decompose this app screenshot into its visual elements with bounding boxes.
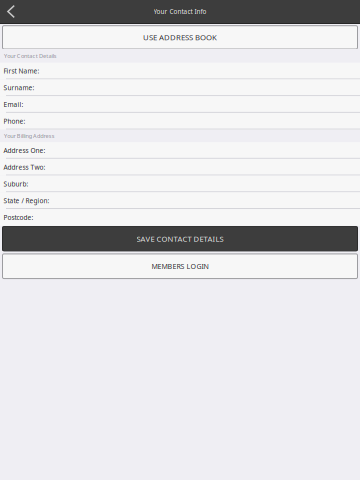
button[interactable]: State / Region: xyxy=(0,192,360,209)
staticText: SAVE CONTACT DETAILS xyxy=(136,233,223,244)
button[interactable]: Surname: xyxy=(0,79,360,96)
staticText: Postcode: xyxy=(3,213,33,222)
button[interactable]: Phone: xyxy=(0,113,360,130)
staticText: MEMBERS LOGIN xyxy=(151,261,208,271)
staticText: Phone: xyxy=(3,117,25,126)
button[interactable]: Address One: xyxy=(0,142,360,159)
staticText: Address One: xyxy=(3,146,45,155)
button[interactable]: SAVE CONTACT DETAILS xyxy=(0,227,360,251)
staticText: Email: xyxy=(3,100,23,109)
button[interactable]: MEMBERS LOGIN xyxy=(0,254,360,279)
staticText: State / Region: xyxy=(3,196,49,205)
staticText: Surname: xyxy=(3,83,34,92)
staticText: Address Two: xyxy=(3,163,45,172)
button[interactable]: First Name: xyxy=(0,63,360,79)
button[interactable]: Back xyxy=(0,0,26,23)
staticText: Your Contact Info xyxy=(153,7,206,16)
staticText: Suburb: xyxy=(3,179,28,188)
staticText: Your Contact Details xyxy=(4,52,57,60)
staticText: Your Billing Address xyxy=(4,132,55,140)
button[interactable]: Postcode: xyxy=(0,209,360,226)
button[interactable]: Suburb: xyxy=(0,176,360,192)
button[interactable]: Address Two: xyxy=(0,159,360,176)
button[interactable]: USE ADDRESS BOOK xyxy=(0,26,360,49)
button[interactable]: Email: xyxy=(0,96,360,113)
staticText: USE ADDRESS BOOK xyxy=(143,32,217,43)
staticText: First Name: xyxy=(3,67,39,75)
